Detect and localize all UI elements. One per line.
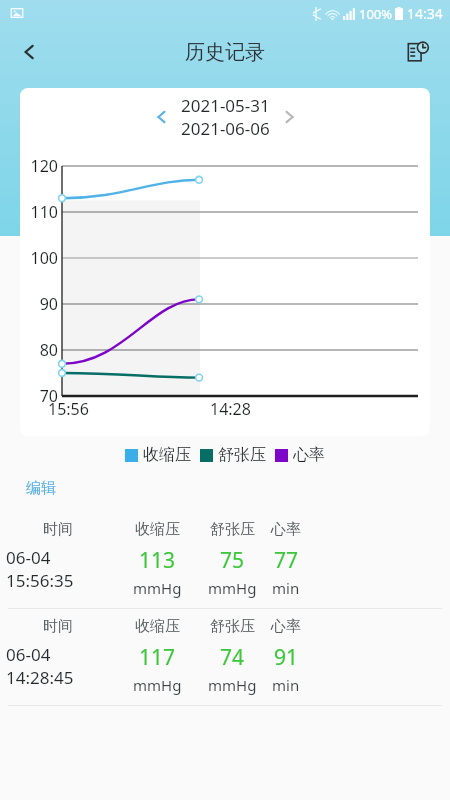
staticText: 2021-05-31 xyxy=(181,94,270,117)
staticText: 收缩压 xyxy=(135,520,180,539)
staticText: 14:28 xyxy=(210,398,251,420)
staticText: 117 xyxy=(139,643,176,672)
button[interactable]: Report xyxy=(396,30,440,74)
staticText: 06-04 xyxy=(6,546,51,569)
staticText: 历史记录 xyxy=(185,40,265,65)
staticText: 91 xyxy=(274,643,299,672)
button[interactable]: 编辑 xyxy=(24,477,58,500)
staticText: 收缩压 xyxy=(143,445,191,465)
staticText: 77 xyxy=(274,546,299,575)
staticText: 110 xyxy=(20,201,58,223)
staticText: 时间 xyxy=(43,520,73,539)
staticText: 15:56:35 xyxy=(6,569,74,592)
staticText: 100% xyxy=(359,5,393,23)
staticText: 100 xyxy=(20,247,58,269)
staticText: 120 xyxy=(20,155,58,177)
staticText: 06-04 xyxy=(6,643,51,666)
staticText: 心率 xyxy=(271,617,301,636)
staticText: 70 xyxy=(20,385,58,407)
staticText: mmHg xyxy=(133,675,182,695)
staticText: 时间 xyxy=(43,617,73,636)
button[interactable]: Back xyxy=(8,30,52,74)
staticText: 15:56 xyxy=(48,398,89,420)
staticText: 90 xyxy=(20,293,58,315)
staticText: mmHg xyxy=(208,578,257,598)
button[interactable]: 时间 xyxy=(0,609,450,705)
staticText: 舒张压 xyxy=(218,445,266,465)
staticText: 14:34 xyxy=(407,4,443,23)
button[interactable]: Next week xyxy=(270,98,308,136)
staticText: 舒张压 xyxy=(210,520,255,539)
staticText: 14:28:45 xyxy=(6,666,74,689)
staticText: min xyxy=(272,578,300,598)
staticText: 心率 xyxy=(293,445,325,465)
staticText: 113 xyxy=(139,546,176,575)
button[interactable]: Previous week xyxy=(143,98,181,136)
staticText: min xyxy=(272,675,300,695)
staticText: 心率 xyxy=(271,520,301,539)
staticText: 80 xyxy=(20,339,58,361)
button[interactable]: 时间 xyxy=(0,512,450,608)
staticText: mmHg xyxy=(133,578,182,598)
staticText: 2021-06-06 xyxy=(181,117,270,140)
staticText: 收缩压 xyxy=(135,617,180,636)
staticText: mmHg xyxy=(208,675,257,695)
staticText: 舒张压 xyxy=(210,617,255,636)
staticText: 74 xyxy=(220,643,245,672)
staticText: 编辑 xyxy=(26,479,56,498)
staticText: 75 xyxy=(220,546,245,575)
